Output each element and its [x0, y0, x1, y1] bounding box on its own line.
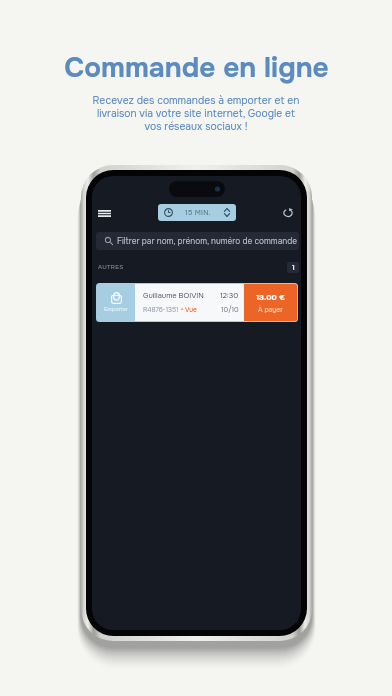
- staticText: R4876-1351: [143, 306, 181, 314]
- staticText: 1: [292, 263, 295, 272]
- staticText: AUTRES: [98, 263, 124, 271]
- staticText: Recevez des commandes à emporter et en l…: [91, 94, 301, 133]
- button[interactable]: Emporter: [97, 284, 297, 321]
- staticText: 15 MIN.: [185, 208, 212, 217]
- staticText: •: [181, 306, 185, 314]
- staticText: À payer: [258, 305, 283, 314]
- staticText: 10/10: [221, 305, 239, 314]
- staticText: Commande en ligne: [64, 50, 329, 86]
- button[interactable]: Refresh: [279, 204, 297, 222]
- staticText: Filtrer par nom, prénom, numéro de comma…: [117, 236, 297, 247]
- button[interactable]: 15 MIN.: [158, 204, 236, 221]
- button[interactable]: Menu: [94, 204, 114, 223]
- staticText: Guillaume BOIVIN: [143, 291, 204, 301]
- staticText: Vue: [185, 306, 197, 314]
- staticText: 13.00 €: [256, 292, 285, 302]
- button[interactable]: Filtrer par nom, prénom, numéro de comma…: [96, 232, 299, 250]
- staticText: Emporter: [104, 306, 128, 313]
- staticText: 12:30: [220, 291, 239, 301]
